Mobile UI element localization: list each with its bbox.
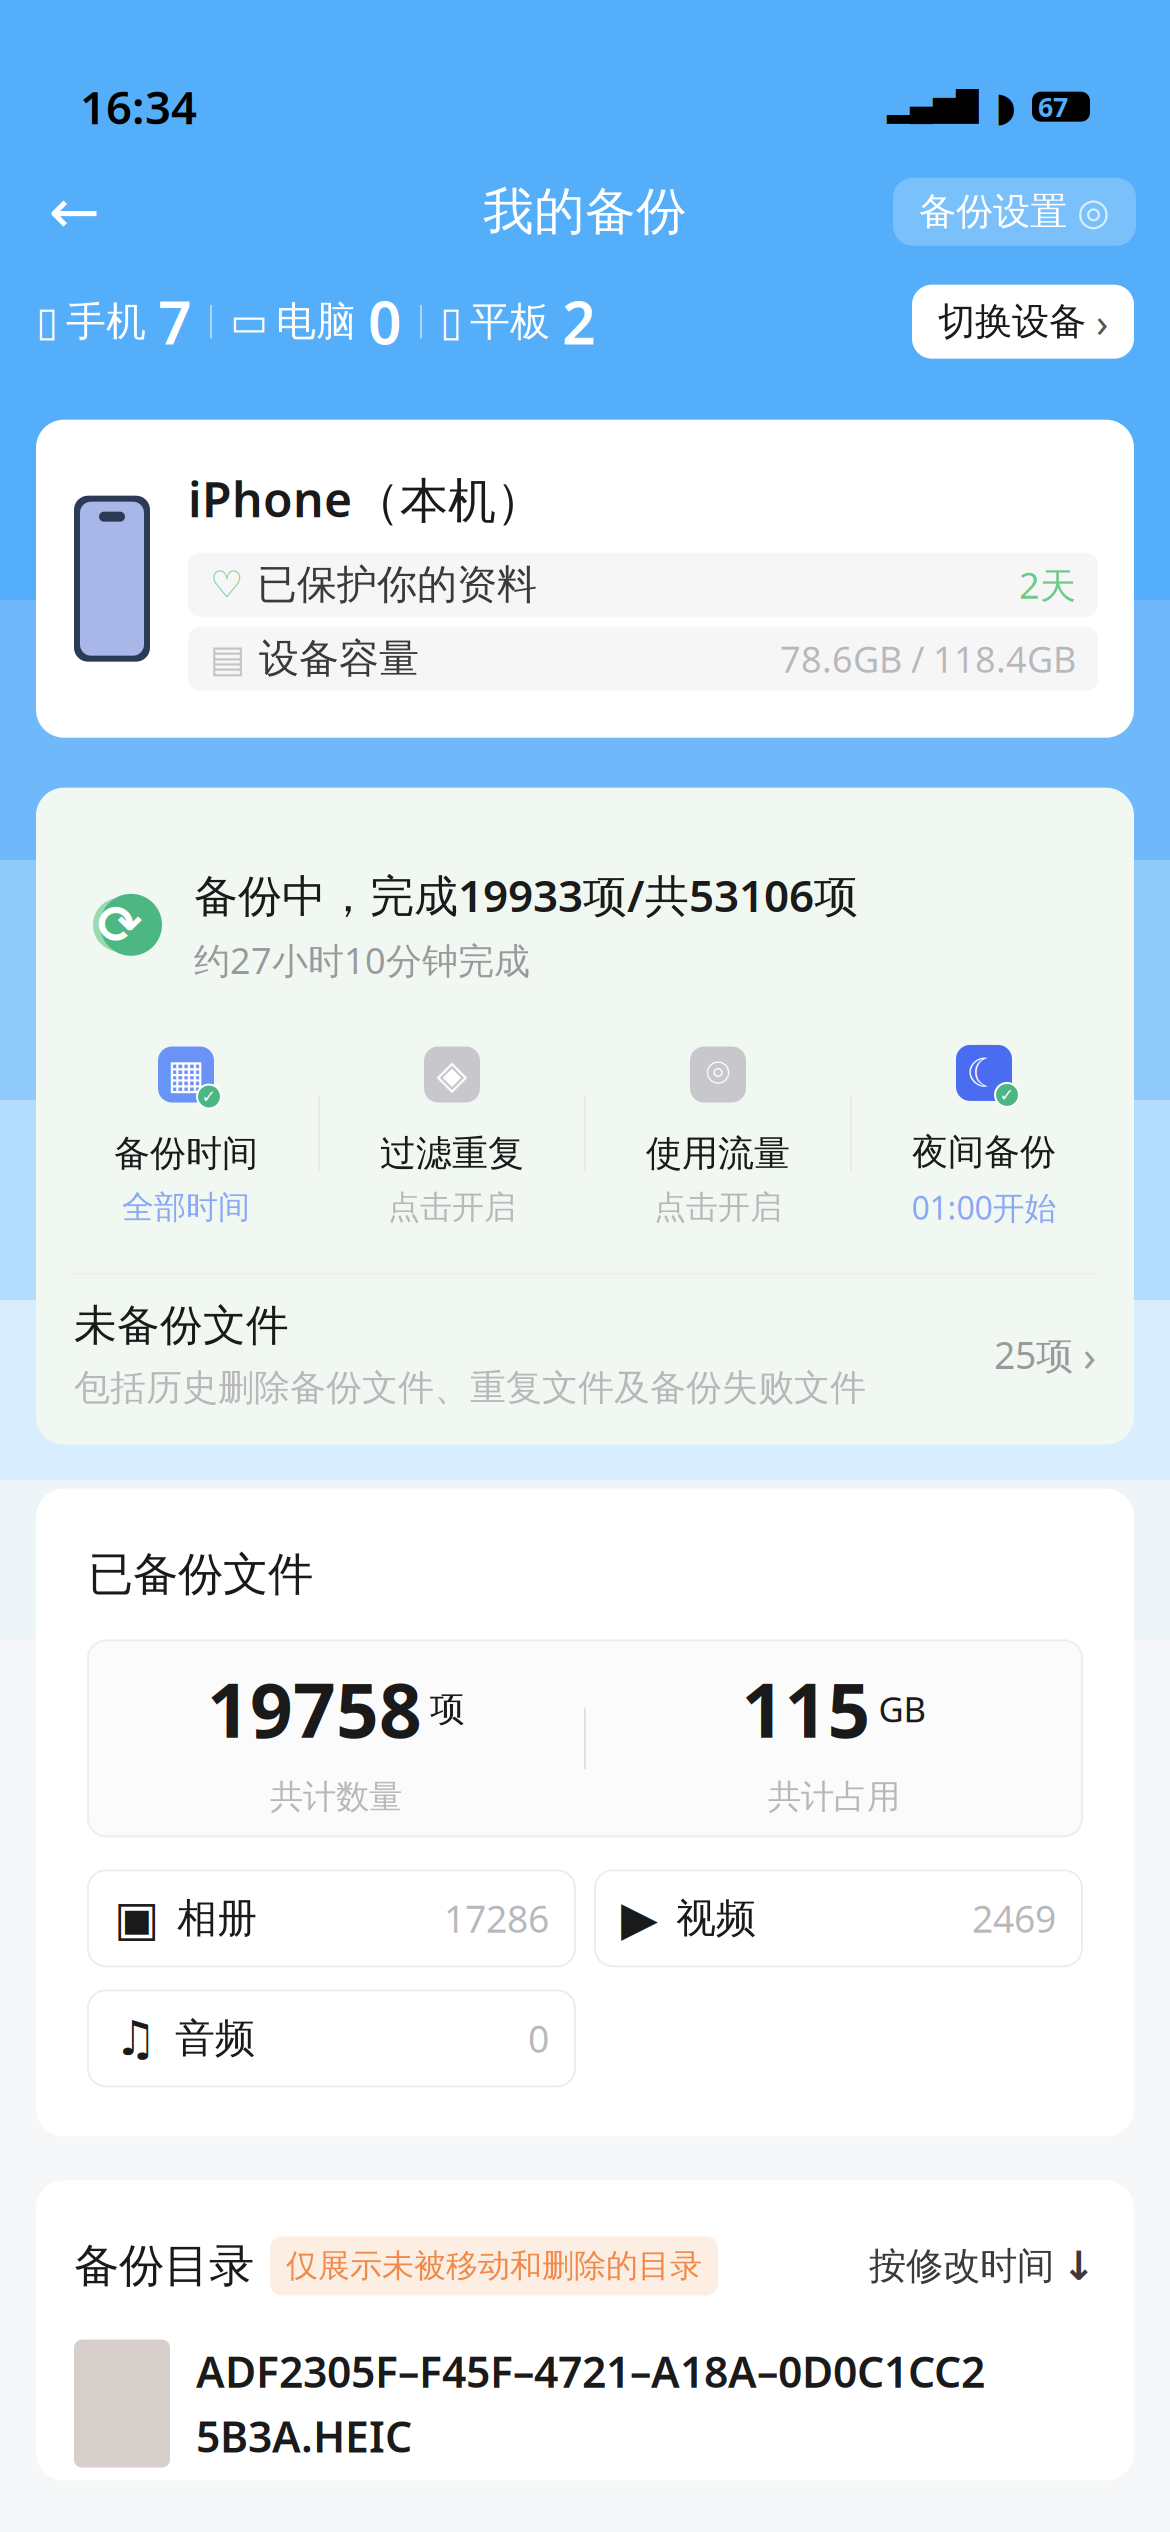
- staticText: 点击开启: [654, 1188, 782, 1227]
- button[interactable]: ☾: [852, 1038, 1116, 1229]
- staticText: 项: [430, 1688, 465, 1730]
- staticText: 音频: [175, 2014, 255, 2063]
- button[interactable]: ▦: [54, 1039, 318, 1227]
- staticText: 点击开启: [388, 1188, 516, 1227]
- staticText: 2469: [972, 1893, 1056, 1943]
- staticText: ↓: [1062, 2243, 1096, 2289]
- staticText: 7: [158, 283, 192, 361]
- staticText: ›: [1083, 1326, 1096, 1383]
- staticText: 备份中，完成19933项/共53106项: [194, 866, 858, 924]
- staticText: 平板: [470, 297, 550, 346]
- staticText: ▂▄▆█: [887, 90, 979, 123]
- staticText: 已备份文件: [88, 1547, 313, 1602]
- staticText: ▭: [230, 299, 268, 344]
- button[interactable]: 未备份文件: [36, 1275, 1134, 1435]
- staticText: 67: [1038, 89, 1068, 124]
- staticText: 已保护你的资料: [257, 560, 537, 609]
- staticText: ⌾: [706, 1055, 730, 1094]
- staticText: 01:00开始: [911, 1186, 1056, 1229]
- staticText: 按修改时间: [869, 2243, 1054, 2289]
- staticText: 视频: [676, 1894, 756, 1943]
- staticText: 19758: [207, 1659, 422, 1758]
- staticText: 共计数量: [270, 1776, 402, 1817]
- staticText: ⟳: [97, 894, 142, 955]
- button[interactable]: ♫: [88, 1990, 575, 2086]
- staticText: ☾: [966, 1050, 1002, 1096]
- staticText: 2: [562, 283, 596, 361]
- button[interactable]: 返回: [34, 172, 114, 252]
- staticText: ←: [48, 177, 99, 246]
- staticText: 25项: [994, 1330, 1073, 1379]
- staticText: ✓: [201, 1087, 216, 1106]
- staticText: ▶: [621, 1891, 658, 1946]
- staticText: 17286: [444, 1893, 549, 1943]
- staticText: ▦: [167, 1052, 205, 1097]
- staticText: 使用流量: [646, 1131, 790, 1176]
- staticText: ▤: [210, 637, 245, 680]
- staticText: ▯: [36, 299, 58, 344]
- staticText: iPhone（本机）: [188, 467, 544, 531]
- staticText: 16:34: [80, 77, 197, 137]
- staticText: ♡: [210, 563, 243, 606]
- staticText: 备份设置: [919, 189, 1067, 235]
- staticText: ADF2305F–F45F–4721–A18A–0D0C1CC2: [196, 2343, 985, 2400]
- staticText: 电脑: [276, 297, 356, 346]
- staticText: 包括历史删除备份文件、重复文件及备份失败文件: [74, 1366, 866, 1410]
- staticText: 备份目录: [74, 2238, 254, 2294]
- button[interactable]: 切换设备: [912, 285, 1134, 359]
- staticText: 115: [741, 1659, 870, 1758]
- staticText: 相册: [177, 1894, 257, 1943]
- staticText: ›: [1096, 295, 1108, 348]
- staticText: ◈: [436, 1052, 467, 1097]
- staticText: 仅展示未被移动和删除的目录: [286, 2246, 702, 2286]
- staticText: ◎: [1077, 190, 1110, 233]
- button[interactable]: ◈: [320, 1039, 584, 1227]
- staticText: 切换设备: [938, 299, 1086, 345]
- staticText: ▣: [114, 1891, 159, 1946]
- staticText: 设备容量: [259, 634, 419, 683]
- staticText: 78.6GB / 118.4GB: [780, 635, 1076, 683]
- staticText: 未备份文件: [74, 1299, 289, 1352]
- staticText: 共计占用: [768, 1776, 900, 1817]
- staticText: 全部时间: [122, 1188, 250, 1227]
- button[interactable]: 按修改时间: [869, 2243, 1096, 2289]
- staticText: 0: [368, 283, 402, 361]
- staticText: 手机: [66, 297, 146, 346]
- staticText: ◗: [995, 84, 1016, 129]
- staticText: 过滤重复: [380, 1131, 524, 1176]
- button[interactable]: ▣: [88, 1870, 575, 1966]
- staticText: 我的备份: [483, 181, 687, 243]
- staticText: 备份时间: [114, 1131, 258, 1176]
- staticText: GB: [878, 1686, 926, 1732]
- button[interactable]: ▶: [595, 1870, 1082, 1966]
- button[interactable]: 备份设置: [893, 178, 1136, 246]
- staticText: 约27小时10分钟完成: [194, 936, 530, 984]
- button[interactable]: ⌾: [586, 1039, 850, 1227]
- staticText: 5B3A.HEIC: [196, 2408, 412, 2464]
- staticText: ▯: [440, 299, 462, 344]
- staticText: ♫: [114, 2011, 157, 2066]
- staticText: 夜间备份: [912, 1130, 1056, 1174]
- staticText: ✓: [999, 1085, 1014, 1105]
- staticText: 2天: [1019, 561, 1076, 609]
- staticText: 0: [528, 2013, 549, 2063]
